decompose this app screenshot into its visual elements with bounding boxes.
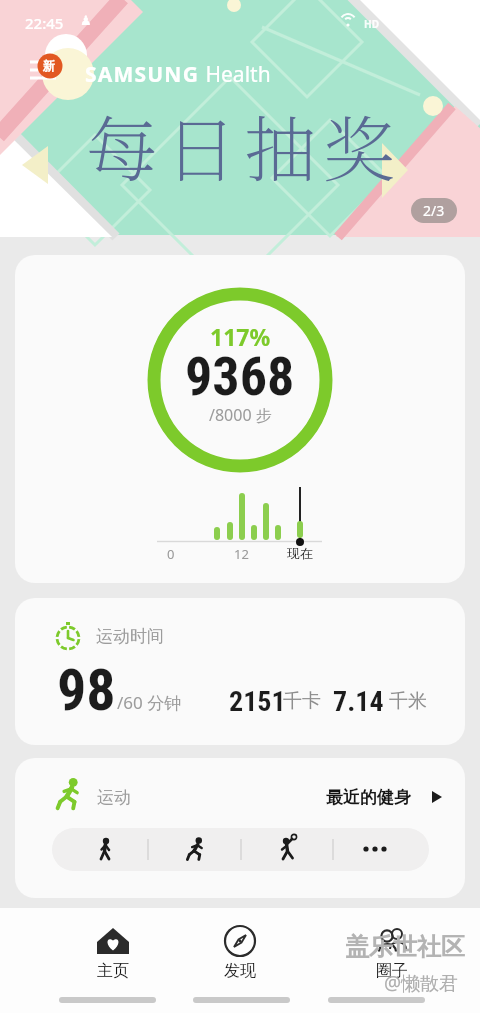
staticText: 千米 xyxy=(389,689,427,713)
staticText: 新 xyxy=(43,58,55,73)
staticText: 主页 xyxy=(97,961,129,981)
staticText: ♟ xyxy=(80,13,92,28)
button[interactable]: 运动时间 xyxy=(15,598,465,745)
staticText: 0 xyxy=(167,545,175,563)
staticText: /60 分钟 xyxy=(117,691,182,714)
button[interactable]: 圈子 xyxy=(332,920,452,992)
staticText: 9368 xyxy=(185,345,295,408)
staticText: 2/3 xyxy=(423,201,445,220)
staticText: 圈子 xyxy=(376,961,408,981)
staticText: 发现 xyxy=(224,961,256,981)
staticText: 现在 xyxy=(287,545,313,561)
staticText: @懒散君 xyxy=(384,970,459,996)
button[interactable]: 22:45 xyxy=(0,0,480,235)
staticText: 最近的健身 xyxy=(326,787,411,808)
staticText: 盖乐世社区 xyxy=(345,932,465,962)
staticText: 运动 xyxy=(97,787,131,808)
staticText: 117% xyxy=(210,321,271,352)
staticText: 千卡 xyxy=(283,689,321,713)
button[interactable]: 发现 xyxy=(180,920,300,992)
staticText: /8000 步 xyxy=(209,404,272,426)
staticText: 2151 xyxy=(229,685,286,718)
staticText: 98 xyxy=(57,656,116,724)
staticText: 7.14 xyxy=(333,685,384,718)
staticText: 每日抽奖 xyxy=(86,93,403,196)
staticText: 12 xyxy=(234,545,249,563)
staticText: 22:45 xyxy=(25,13,64,33)
staticText: HD xyxy=(364,17,379,31)
staticText: 运动时间 xyxy=(96,626,164,647)
button[interactable]: 117% xyxy=(15,255,465,583)
button[interactable] xyxy=(52,828,429,871)
button[interactable]: 主页 xyxy=(53,920,173,992)
button[interactable]: 运动 xyxy=(15,758,465,898)
staticText: Health xyxy=(200,60,271,89)
staticText: SAMSUNG xyxy=(85,60,200,89)
